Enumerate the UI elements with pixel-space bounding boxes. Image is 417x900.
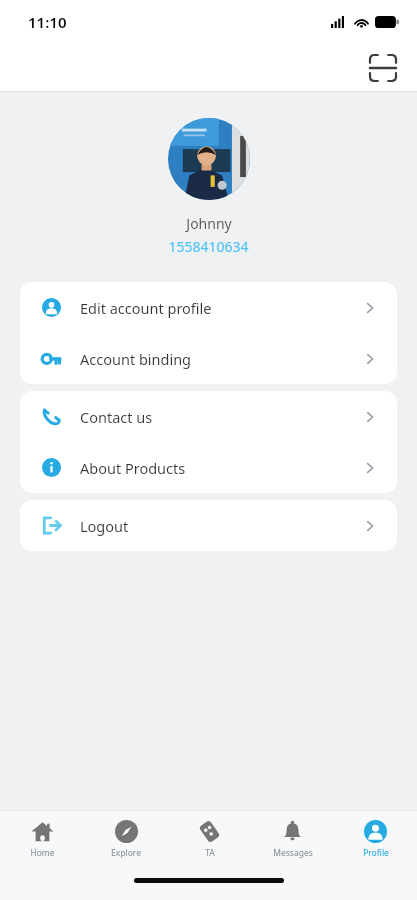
- staticText: Profile: [363, 847, 389, 859]
- button[interactable]: Profile picture: [168, 118, 250, 200]
- button[interactable]: TA: [168, 811, 251, 868]
- button[interactable]: Home: [0, 811, 84, 868]
- button[interactable]: Account binding: [20, 333, 397, 384]
- staticText: Contact us: [80, 407, 153, 427]
- staticText: About Products: [80, 458, 186, 478]
- button[interactable]: Messages: [251, 811, 334, 868]
- button[interactable]: About Products: [20, 442, 397, 493]
- button[interactable]: Edit account profile: [20, 282, 397, 333]
- staticText: Home: [30, 847, 55, 859]
- button[interactable]: Contact us: [20, 391, 397, 442]
- button[interactable]: 1558410634: [168, 237, 249, 256]
- button[interactable]: Scan QR code: [361, 46, 405, 90]
- staticText: Johnny: [186, 214, 232, 233]
- staticText: Logout: [80, 516, 129, 536]
- button[interactable]: Explore: [84, 811, 168, 868]
- button[interactable]: Logout: [20, 500, 397, 551]
- staticText: Messages: [273, 847, 313, 859]
- button[interactable]: Profile: [334, 811, 417, 868]
- staticText: Edit account profile: [80, 298, 212, 318]
- staticText: 11:10: [28, 12, 67, 32]
- staticText: Explore: [111, 847, 141, 859]
- staticText: Account binding: [80, 349, 192, 369]
- staticText: TA: [205, 847, 215, 859]
